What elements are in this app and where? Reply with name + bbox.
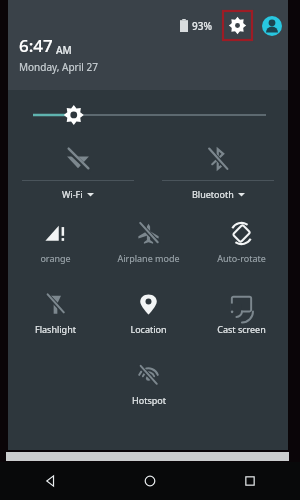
button[interactable]: Home	[100, 462, 200, 500]
staticText: 6:47	[19, 34, 53, 57]
button[interactable]: User profile	[262, 16, 282, 36]
staticText: Flashlight	[35, 323, 76, 335]
button[interactable]: Settings	[223, 11, 252, 40]
button[interactable]: Wi-Fi	[8, 138, 148, 210]
staticText: Bluetooth	[192, 188, 234, 200]
button[interactable]: Bluetooth	[148, 138, 288, 210]
staticText: orange	[40, 252, 71, 264]
staticText: Location	[130, 323, 167, 335]
button[interactable]: Back	[0, 462, 100, 500]
button[interactable]: Auto-rotate	[195, 216, 288, 264]
staticText: Hotspot	[132, 394, 166, 406]
button[interactable]: Cast screen	[195, 287, 288, 335]
staticText: Auto-rotate	[217, 252, 266, 264]
button[interactable]: orange	[8, 216, 102, 264]
staticText: Monday, April 27	[19, 60, 98, 74]
button[interactable]: Location	[102, 287, 195, 335]
button[interactable]: Brightness	[8, 90, 288, 138]
staticText: Airplane mode	[117, 252, 180, 264]
button[interactable]: Hotspot	[102, 358, 195, 406]
staticText: AM	[56, 43, 72, 57]
button[interactable]: Recents	[200, 462, 300, 500]
staticText: Cast screen	[217, 323, 266, 335]
button[interactable]: Flashlight	[8, 287, 102, 335]
staticText: 93%	[192, 19, 212, 33]
button[interactable]: Airplane mode	[102, 216, 195, 264]
staticText: Wi-Fi	[62, 188, 83, 200]
